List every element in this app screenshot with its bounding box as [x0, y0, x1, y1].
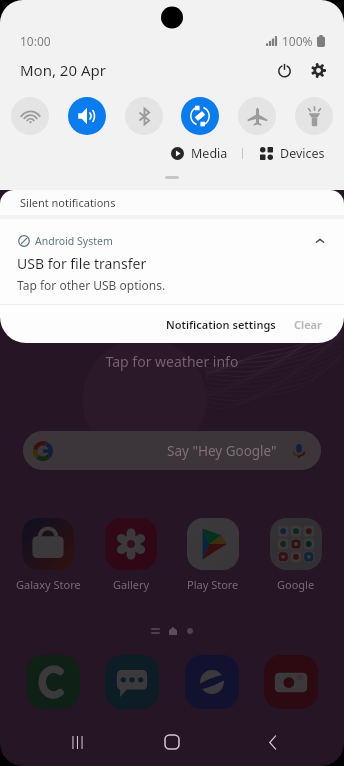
staticText: Google	[277, 577, 315, 592]
staticText: Notification settings	[166, 317, 276, 332]
button[interactable]: Media	[165, 140, 234, 167]
button[interactable]: Home	[152, 722, 192, 762]
staticText: Tap for weather info	[0, 352, 344, 371]
button[interactable]: Camera	[264, 655, 318, 709]
staticText: Tap for other USB options.	[17, 277, 166, 293]
button[interactable]: Notification settings	[158, 308, 284, 341]
button[interactable]: Phone	[26, 655, 80, 709]
button[interactable]: Internet	[185, 655, 239, 709]
staticText: USB for file transfer	[17, 254, 147, 273]
staticText: 10:00	[20, 33, 51, 49]
staticText: Say "Hey Google"	[167, 442, 277, 460]
button[interactable]: Say "Hey Google"	[23, 431, 321, 470]
button[interactable]: Back	[252, 722, 292, 762]
staticText: Mon, 20 Apr	[20, 60, 106, 80]
staticText: Galaxy Store	[16, 577, 81, 592]
button[interactable]: Galaxy Store	[14, 518, 82, 592]
staticText: Devices	[280, 145, 325, 162]
staticText: Media	[191, 145, 228, 162]
button[interactable]: Auto rotate	[181, 97, 219, 135]
button[interactable]: Play Store	[179, 518, 247, 592]
button[interactable]: Gallery	[97, 518, 165, 592]
button[interactable]: Flashlight	[295, 97, 333, 135]
staticText: Play Store	[187, 577, 239, 592]
button[interactable]: Recents	[57, 722, 97, 762]
button[interactable]: Messages	[105, 655, 159, 709]
staticText: Clear	[294, 317, 322, 332]
button[interactable]: Sound	[68, 97, 106, 135]
staticText: 100%	[282, 33, 313, 49]
button[interactable]: Collapse	[312, 233, 328, 249]
staticText: Gallery	[113, 577, 150, 592]
button[interactable]: Wi-Fi	[11, 97, 49, 135]
button[interactable]: Bluetooth	[125, 97, 163, 135]
button[interactable]: Clear	[284, 308, 332, 341]
button[interactable]: Settings	[311, 63, 326, 78]
button[interactable]: Google	[262, 518, 330, 592]
button[interactable]: Devices	[254, 140, 331, 167]
staticText: Android System	[35, 234, 113, 248]
button[interactable]: Airplane mode	[238, 97, 276, 135]
button[interactable]: Power off	[277, 63, 292, 78]
staticText: Silent notifications	[20, 195, 116, 210]
